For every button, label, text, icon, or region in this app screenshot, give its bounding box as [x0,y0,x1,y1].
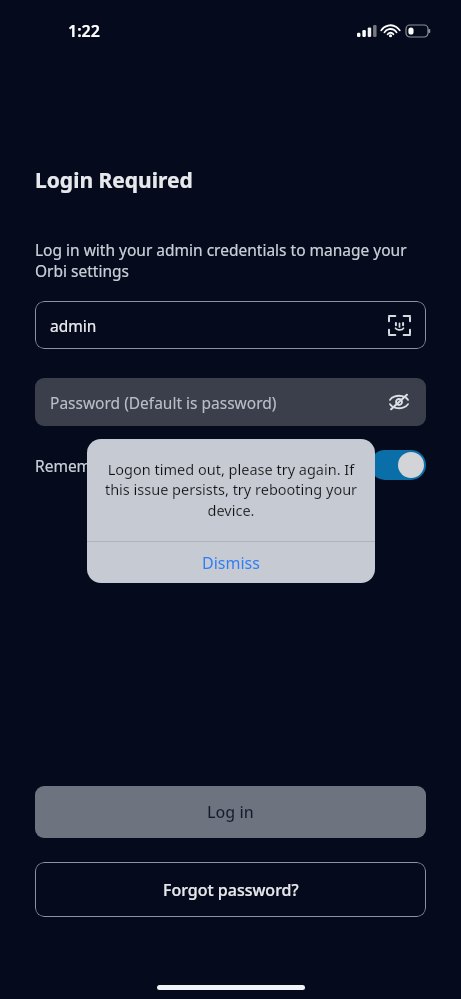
staticText: Password (Default is password) [50,392,277,413]
staticText: 1:22 [68,20,100,42]
staticText: admin [50,315,97,336]
button[interactable]: Dismiss [87,542,375,583]
staticText: Remember me [35,455,144,476]
button[interactable]: Password (Default is password) [35,378,426,426]
button[interactable]: admin [35,301,426,349]
button[interactable]: Show password [384,387,414,417]
button[interactable]: Face ID [384,310,414,340]
staticText: Forgot password? [163,879,299,901]
button[interactable]: Log in [35,786,426,838]
button[interactable]: Remember me [35,448,426,482]
staticText: Log in with your admin credentials to ma… [35,239,426,282]
staticText: Logon timed out, please try again. If th… [103,459,359,521]
button[interactable]: Forgot password? [35,862,426,917]
staticText: Log in [207,801,254,823]
staticText: Login Required [35,166,193,195]
staticText: Dismiss [202,552,260,574]
